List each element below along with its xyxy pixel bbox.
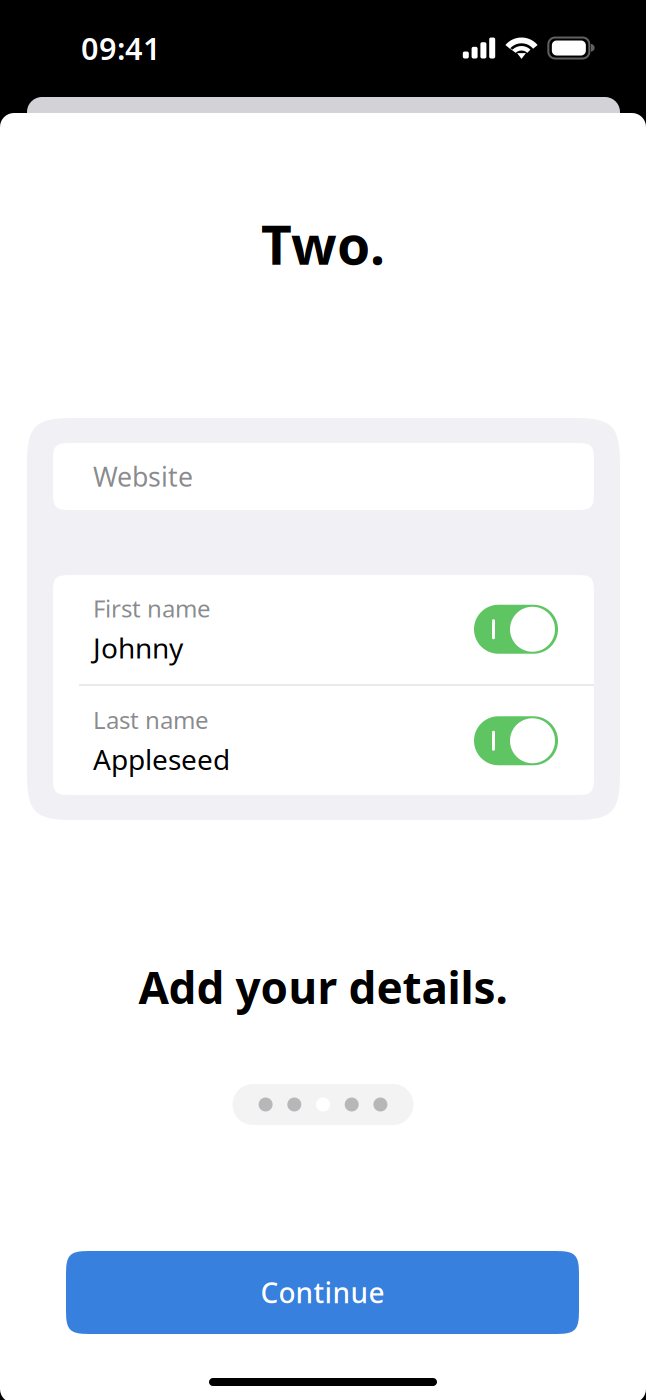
staticText: Last name bbox=[93, 704, 209, 736]
button[interactable]: On bbox=[474, 716, 558, 765]
staticText: First name bbox=[93, 592, 211, 624]
staticText: Johnny bbox=[93, 629, 183, 666]
staticText: Continue bbox=[260, 1274, 384, 1311]
button[interactable]: Website bbox=[53, 443, 594, 510]
button[interactable]: Continue bbox=[66, 1251, 579, 1334]
button[interactable]: On bbox=[474, 605, 558, 654]
staticText: Two. bbox=[261, 209, 385, 279]
staticText: Add your details. bbox=[138, 958, 507, 1016]
staticText: Website bbox=[93, 459, 193, 494]
staticText: Appleseed bbox=[93, 741, 230, 778]
staticText: 09:41 bbox=[81, 28, 161, 68]
